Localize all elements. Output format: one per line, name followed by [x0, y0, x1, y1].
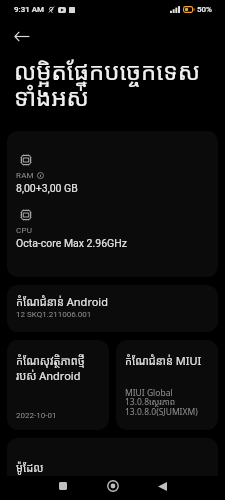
staticText: លម្អិតផ្នែកបច្ចេកទេសទាំងអស់	[14, 54, 211, 113]
button[interactable]: RAM	[7, 131, 218, 277]
button[interactable]: កំណែសុវត្ថិភាពថ្មីរបស់ Android	[7, 340, 109, 430]
staticText: MIUI Global 13.0.8ស្ថេរភាព 13.0.8.0(SJUM…	[125, 387, 198, 418]
staticText: RAM	[16, 171, 34, 180]
staticText: 9:31 AM	[14, 5, 45, 14]
staticText: 50%	[197, 5, 212, 14]
staticText: 12 SKQ1.211006.001	[16, 310, 92, 319]
staticText: កំណែជំនាន់ MIUI	[125, 353, 202, 368]
staticText: Octa-core Max 2.96GHz	[16, 237, 127, 249]
button[interactable]: កំណែជំនាន់ MIUI	[116, 340, 218, 430]
button[interactable]: Recent apps	[44, 475, 82, 497]
button[interactable]: Home	[94, 475, 132, 497]
staticText: 2022-10-01	[16, 411, 57, 420]
staticText: ម៉ូដែល	[16, 460, 44, 475]
staticText: CPU	[16, 226, 33, 235]
staticText: 8,00+3,00 GB	[16, 182, 78, 194]
staticText: កំណែជំនាន់ Android	[16, 294, 108, 309]
button[interactable]: Back	[143, 475, 181, 497]
button[interactable]: កំណែជំនាន់ Android	[7, 285, 218, 332]
button[interactable]: ម៉ូដែល	[7, 438, 218, 500]
staticText: កំណែសុវត្ថិភាពថ្មីរបស់ Android	[16, 353, 101, 383]
button[interactable]: Back	[0, 21, 44, 51]
